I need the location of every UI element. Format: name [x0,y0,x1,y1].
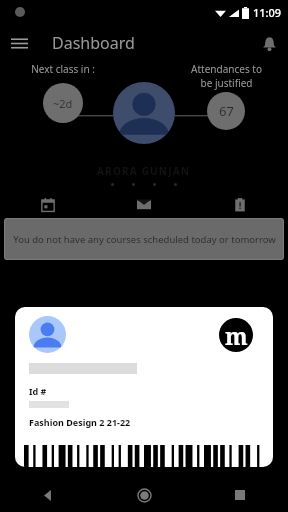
staticText: m [225,320,248,351]
button[interactable]: 67 [207,92,245,130]
staticText: 11:09 [253,5,282,20]
button[interactable]: Messages [96,192,192,218]
button[interactable]: Timetable [0,192,96,218]
staticText: 67 [219,102,234,120]
staticText: Dashboard [52,32,135,54]
button[interactable]: Profile [113,82,175,144]
button[interactable]: Back [0,478,96,512]
staticText: ~2d [53,96,73,111]
button[interactable]: Notifications [250,24,288,62]
button[interactable]: m [15,307,273,467]
button[interactable]: Recent apps [192,478,288,512]
button[interactable]: Attendances to be justified [178,62,274,130]
button[interactable]: Open navigation menu [0,24,38,62]
button[interactable]: ~2d [43,83,83,123]
staticText: Next class in : [31,62,95,76]
button[interactable]: Next class in : [20,62,106,123]
button[interactable]: Home [96,478,192,512]
staticText: Id # [29,385,47,397]
button[interactable]: Reports [192,192,288,218]
staticText: ARORA GUNJAN [97,164,191,178]
staticText: You do not have any courses scheduled to… [13,233,276,246]
button[interactable]: You do not have any courses scheduled to… [4,218,284,260]
staticText: Fashion Design 2 21-22 [29,416,131,428]
staticText: Attendances to be justified [191,62,262,90]
